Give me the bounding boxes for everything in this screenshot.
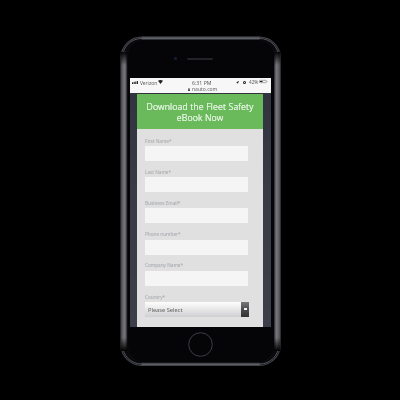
staticText: Please Select <box>148 306 183 314</box>
staticText: 42% <box>249 79 259 85</box>
staticText: Download the Fleet Safety eBook Now <box>146 101 254 124</box>
button[interactable]: Download the Fleet Safety eBook Now <box>137 94 263 129</box>
staticText: Country* <box>145 294 166 300</box>
button[interactable]: Open country list <box>241 302 249 317</box>
staticText: Company Name* <box>145 262 184 268</box>
button[interactable]: Home <box>188 332 213 357</box>
staticText: Phone number* <box>145 231 181 237</box>
staticText: 6:31 PM <box>192 79 212 86</box>
staticText: nauto.com <box>192 86 218 93</box>
staticText: Verizon <box>140 80 158 87</box>
staticText: Business Email* <box>145 200 181 206</box>
staticText: First Name* <box>145 138 172 144</box>
staticText: Last Name* <box>145 169 172 175</box>
button[interactable]: Please Select <box>145 302 249 317</box>
